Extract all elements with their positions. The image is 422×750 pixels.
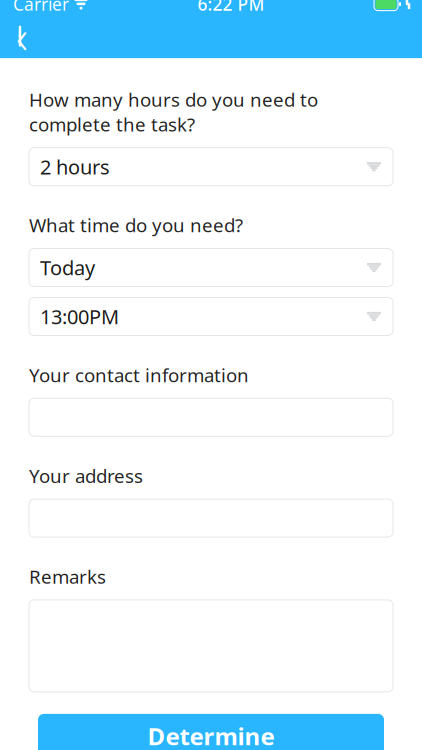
- staticText: 13:00PM: [40, 303, 119, 330]
- staticText: How many hours do you need to complete t…: [29, 87, 318, 137]
- button[interactable]: 2 hours: [29, 148, 393, 186]
- staticText: Today: [40, 254, 95, 281]
- staticText: 2 hours: [40, 153, 110, 180]
- button[interactable]: Determine: [38, 714, 384, 750]
- button[interactable]: Back: [0, 16, 44, 56]
- staticText: 6:22 PM: [197, 0, 264, 16]
- staticText: ‹: [16, 6, 28, 66]
- staticText: Carrier: [13, 0, 69, 16]
- staticText: Your contact information: [29, 362, 249, 387]
- staticText: Determine: [147, 720, 274, 750]
- staticText: Remarks: [29, 564, 106, 589]
- button[interactable]: Text field: [29, 398, 393, 436]
- button[interactable]: 13:00PM: [29, 297, 393, 335]
- staticText: What time do you need?: [29, 213, 243, 237]
- button[interactable]: Text field: [29, 499, 393, 537]
- button[interactable]: Today: [29, 248, 393, 286]
- staticText: Your address: [29, 463, 143, 488]
